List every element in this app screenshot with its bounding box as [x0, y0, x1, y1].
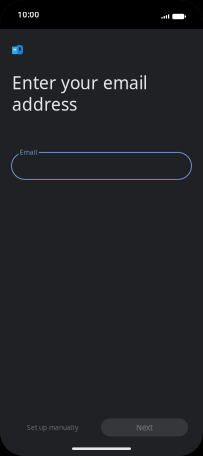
staticText: Next [136, 422, 153, 433]
staticText: Email [20, 148, 38, 157]
button[interactable]: Set up manually [11, 418, 89, 436]
staticText: Enter your email address [12, 71, 147, 115]
staticText: Set up manually [27, 423, 78, 432]
button[interactable]: Next [101, 418, 188, 436]
staticText: 10:00 [17, 9, 39, 20]
